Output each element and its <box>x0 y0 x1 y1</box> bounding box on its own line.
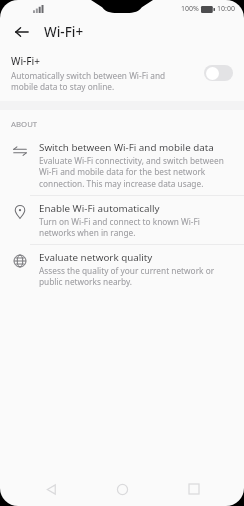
staticText: Wi-Fi+ <box>44 23 84 41</box>
button[interactable]: Back <box>9 19 35 45</box>
staticText: Evaluate network quality <box>39 251 153 264</box>
staticText: Wi-Fi+ <box>11 54 41 68</box>
staticText: 10:00 <box>217 4 235 14</box>
button[interactable]: Wi-Fi+ <box>0 47 244 101</box>
button[interactable]: Back <box>30 472 72 506</box>
button[interactable]: Enable Wi-Fi automatically <box>0 196 244 245</box>
staticText: Switch between Wi-Fi and mobile data <box>39 141 214 154</box>
staticText: 100% <box>181 4 199 14</box>
staticText: Assess the quality of your current netwo… <box>39 265 231 287</box>
button[interactable]: Wi-Fi+ switch <box>204 65 233 81</box>
staticText: Turn on Wi-Fi and connect to known Wi-Fi… <box>39 216 231 238</box>
staticText: Automatically switch between Wi-Fi and m… <box>11 70 194 92</box>
staticText: ABOUT <box>11 119 38 130</box>
button[interactable]: Home <box>101 472 143 506</box>
staticText: Enable Wi-Fi automatically <box>39 202 160 215</box>
button[interactable]: Recents <box>173 472 215 506</box>
staticText: Evaluate Wi-Fi connectivity, and switch … <box>39 155 231 189</box>
button[interactable]: Evaluate network quality <box>0 245 244 293</box>
button[interactable]: Switch between Wi-Fi and mobile data <box>0 135 244 196</box>
